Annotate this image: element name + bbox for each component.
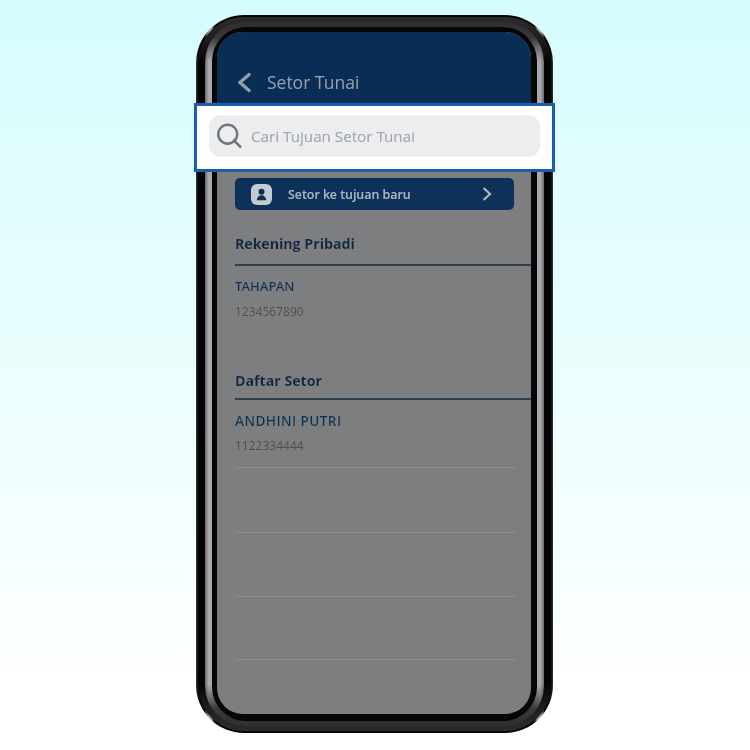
button[interactable]: Search [209, 115, 540, 157]
staticText: Setor Tunai [267, 70, 360, 94]
staticText: Rekening Pribadi [235, 234, 355, 253]
staticText: 1122334444 [235, 437, 304, 453]
button[interactable]: Setor ke tujuan baru [235, 178, 514, 210]
staticText: ANDHINI PUTRI [235, 411, 342, 430]
staticText: 1234567890 [235, 303, 304, 319]
button[interactable] [217, 411, 531, 454]
staticText: Daftar Setor [235, 371, 323, 390]
button[interactable]: Back [229, 62, 360, 102]
button[interactable] [217, 277, 531, 320]
other: Search [218, 124, 242, 148]
staticText: TAHAPAN [235, 277, 295, 295]
staticText: Cari Tujuan Setor Tunai [251, 126, 415, 147]
staticText: Setor ke tujuan baru [288, 186, 411, 203]
